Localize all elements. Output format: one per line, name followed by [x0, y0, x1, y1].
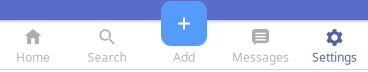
button[interactable]: Add — [148, 20, 220, 72]
button[interactable]: Search — [66, 20, 148, 72]
staticText: Add — [173, 49, 195, 65]
staticText: Messages — [232, 49, 289, 65]
button[interactable]: Settings — [301, 20, 368, 72]
staticText: Home — [16, 49, 50, 65]
button[interactable]: Messages — [220, 20, 301, 72]
staticText: Search — [87, 49, 126, 65]
button[interactable]: Add — [161, 1, 207, 46]
staticText: Settings — [312, 49, 357, 65]
button[interactable]: Home — [0, 20, 66, 72]
